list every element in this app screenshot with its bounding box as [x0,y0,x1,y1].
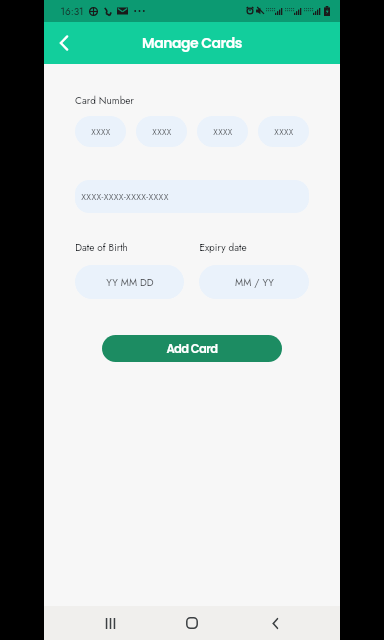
staticText: Card Number [75,93,134,107]
staticText: Manage Cards [142,33,242,53]
button[interactable]: YY MM DD [75,265,184,299]
button[interactable]: XXXX [75,116,126,147]
button[interactable]: MM / YY [199,265,309,299]
button[interactable]: Back [50,29,78,57]
staticText: Date of Birth [75,240,128,254]
staticText: YY MM DD [106,275,154,289]
staticText: XXXX [274,126,294,138]
button[interactable]: XXXX [136,116,187,147]
staticText: 16:31 [60,4,84,18]
staticText: XXXX [152,126,172,138]
button[interactable]: XXXX [258,116,309,147]
staticText: XXXX [213,126,233,138]
staticText: Add Card [166,341,218,357]
staticText: XXXX [91,126,111,138]
staticText: Expiry date [199,240,247,254]
staticText: MM / YY [235,275,274,289]
button[interactable]: XXXX-XXXX-XXXX-XXXX [75,180,309,213]
button[interactable]: Recents [93,606,127,640]
button[interactable]: Add Card [102,335,282,362]
button[interactable]: Home [175,606,209,640]
button[interactable]: Back [258,606,292,640]
button[interactable]: XXXX [197,116,248,147]
staticText: XXXX-XXXX-XXXX-XXXX [81,191,169,203]
